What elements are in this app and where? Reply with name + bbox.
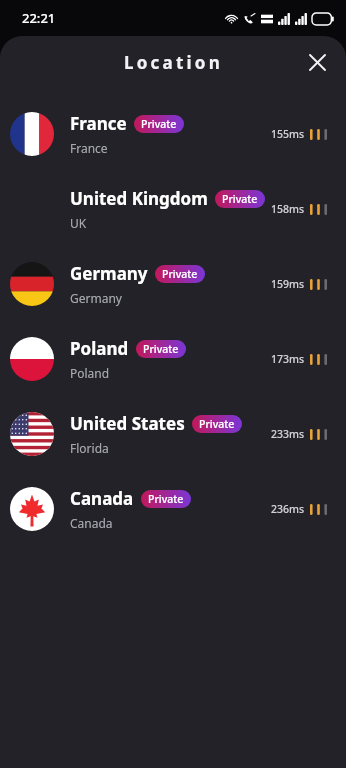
staticText: Private xyxy=(162,267,198,281)
staticText: 173ms xyxy=(271,352,305,366)
staticText: Florida xyxy=(70,440,109,456)
button[interactable]: Canada xyxy=(0,471,346,546)
staticText: France xyxy=(70,112,127,135)
staticText: Private xyxy=(141,117,177,131)
staticText: 158ms xyxy=(271,202,305,216)
button[interactable]: Close xyxy=(300,45,334,79)
staticText: Germany xyxy=(70,262,148,285)
staticText: Poland xyxy=(70,365,110,381)
staticText: United Kingdom xyxy=(70,187,208,210)
staticText: 155ms xyxy=(271,127,305,141)
button[interactable]: United States xyxy=(0,396,346,471)
staticText: Private xyxy=(143,342,179,356)
staticText: Location xyxy=(124,51,223,74)
staticText: Poland xyxy=(70,337,129,360)
staticText: Private xyxy=(222,192,258,206)
staticText: Germany xyxy=(70,290,122,306)
staticText: 159ms xyxy=(271,277,305,291)
staticText: 233ms xyxy=(271,427,305,441)
staticText: 236ms xyxy=(271,502,305,516)
staticText: Private xyxy=(199,417,235,431)
staticText: Canada xyxy=(70,487,134,510)
button[interactable]: Germany xyxy=(0,246,346,321)
staticText: UK xyxy=(70,215,87,231)
staticText: Canada xyxy=(70,515,113,531)
button[interactable]: France xyxy=(0,96,346,171)
staticText: France xyxy=(70,140,108,156)
staticText: 22:21 xyxy=(22,9,56,27)
button[interactable]: United Kingdom xyxy=(0,171,346,246)
staticText: Private xyxy=(148,492,184,506)
staticText: United States xyxy=(70,412,185,435)
button[interactable]: Poland xyxy=(0,321,346,396)
